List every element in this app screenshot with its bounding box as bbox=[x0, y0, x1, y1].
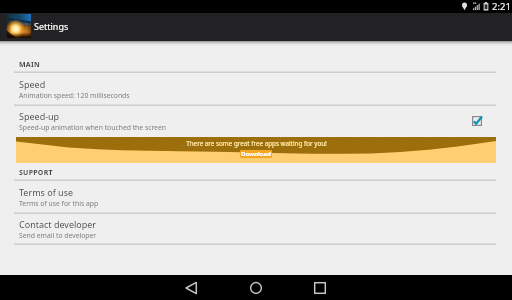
staticText: There are some great free apps waiting f… bbox=[186, 139, 327, 148]
button[interactable]: Speed-up bbox=[0, 105, 512, 137]
button[interactable]: Speed bbox=[0, 72, 512, 105]
button[interactable]: Download bbox=[240, 150, 272, 158]
button[interactable]: Back bbox=[180, 276, 204, 300]
button[interactable]: App icon bbox=[7, 14, 31, 38]
staticText: Contact developer bbox=[19, 218, 97, 230]
staticText: SUPPORT bbox=[19, 168, 53, 178]
staticText: 2:21 bbox=[492, 0, 511, 13]
staticText: MAIN bbox=[19, 60, 40, 70]
staticText: Download bbox=[241, 150, 271, 158]
staticText: Terms of use for this app bbox=[19, 199, 99, 208]
button[interactable]: Home bbox=[244, 276, 268, 300]
button[interactable]: Recents bbox=[308, 276, 332, 300]
button[interactable]: Contact developer bbox=[0, 213, 512, 244]
staticText: Terms of use bbox=[19, 186, 74, 198]
staticText: Speed-up animation when touched the scre… bbox=[19, 123, 166, 132]
staticText: Send email to developer bbox=[19, 231, 97, 240]
button[interactable]: Terms of use bbox=[0, 180, 512, 213]
staticText: Animation speed: 120 milliseconds bbox=[19, 91, 130, 100]
button[interactable]: There are some great free apps waiting f… bbox=[16, 137, 496, 163]
staticText: Settings bbox=[34, 20, 69, 32]
staticText: Speed bbox=[19, 78, 46, 90]
staticText: Speed-up bbox=[19, 110, 60, 122]
